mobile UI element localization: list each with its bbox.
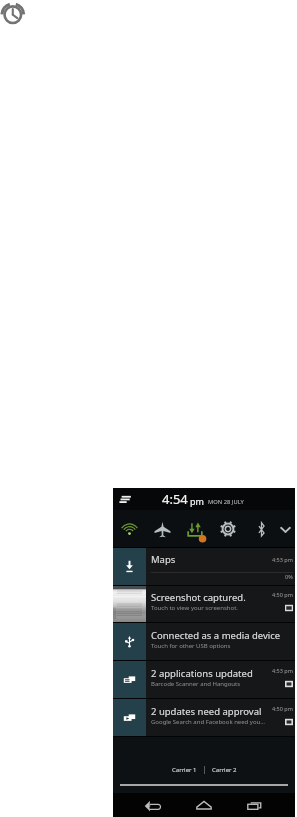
button[interactable]: airplane — [147, 510, 177, 548]
button[interactable]: Clear all notifications — [118, 492, 132, 506]
staticText: Carrier 1 — [172, 766, 197, 774]
staticText: 4:53 pm — [272, 556, 293, 563]
staticText: MON 28 JULY — [208, 498, 244, 506]
staticText: pm — [190, 495, 204, 507]
staticText: 4:50 pm — [272, 591, 293, 598]
button[interactable]: Recents — [236, 793, 274, 817]
staticText: Touch to view your screenshot. — [151, 604, 285, 612]
button[interactable]: Home — [185, 793, 223, 817]
staticText: Carrier 2 — [212, 766, 237, 774]
staticText: Barcode Scanner and Hangouts — [151, 680, 285, 688]
staticText: 4:53 pm — [272, 667, 293, 674]
staticText: Google Search and Facebook need you… — [151, 718, 285, 726]
button[interactable]: Alarm — [2, 2, 26, 26]
button[interactable]: Connected as a media device — [113, 623, 295, 660]
button[interactable]: settings — [213, 510, 243, 548]
button[interactable]: Back — [134, 793, 172, 817]
staticText: 4:54 — [162, 490, 188, 508]
staticText: 2 updates need approval — [151, 705, 272, 718]
button[interactable]: Screenshot captured. — [113, 586, 295, 622]
staticText: 4:50 pm — [272, 705, 293, 712]
staticText: 2 applications updated — [151, 667, 272, 680]
button[interactable]: wifi — [114, 510, 144, 548]
staticText: Touch for other USB options — [151, 642, 293, 650]
button[interactable]: bt — [246, 510, 276, 548]
staticText: Screenshot captured. — [151, 591, 272, 604]
staticText: Maps — [151, 553, 272, 566]
button[interactable]: 2 updates need approval — [113, 699, 295, 736]
staticText: Connected as a media device — [151, 629, 293, 642]
staticText: 0% — [285, 573, 293, 580]
button[interactable]: data — [180, 510, 210, 548]
button[interactable]: chevron — [270, 510, 297, 548]
button[interactable]: Maps — [113, 548, 295, 585]
button[interactable]: 2 applications updated — [113, 661, 295, 698]
